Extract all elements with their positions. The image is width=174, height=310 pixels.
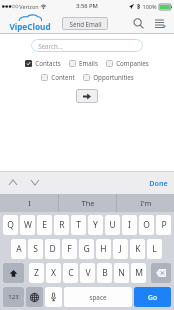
staticText: VipeCloud xyxy=(9,21,51,32)
staticText: A xyxy=(16,243,22,255)
button[interactable]: Y xyxy=(88,215,103,235)
staticText: The xyxy=(81,198,95,208)
button[interactable]: Next xyxy=(28,176,41,189)
button[interactable]: Content xyxy=(41,72,75,82)
staticText: J xyxy=(119,243,122,255)
staticText: H xyxy=(100,243,107,255)
staticText: E xyxy=(42,219,47,231)
button[interactable]: Contacts xyxy=(25,58,61,68)
button[interactable]: space xyxy=(64,287,132,307)
button[interactable]: Search xyxy=(128,13,148,33)
staticText: I xyxy=(28,198,31,208)
button[interactable]: VipeCloud xyxy=(4,12,56,34)
staticText: V xyxy=(85,267,91,279)
staticText: Q xyxy=(7,219,14,231)
button[interactable]: O xyxy=(139,215,154,235)
button[interactable]: L xyxy=(147,239,162,259)
staticText: Go xyxy=(148,293,157,302)
button[interactable]: Go xyxy=(76,89,98,103)
button[interactable]: Q xyxy=(3,215,18,235)
button[interactable]: Previous xyxy=(6,176,19,189)
button[interactable]: I xyxy=(122,215,137,235)
button[interactable]: Emails xyxy=(69,58,98,68)
staticText: O xyxy=(143,219,150,231)
button[interactable]: Search... xyxy=(31,39,143,52)
button[interactable]: A xyxy=(11,239,26,259)
staticText: K xyxy=(135,243,141,255)
staticText: B xyxy=(102,267,108,279)
staticText: Y xyxy=(93,219,98,231)
button[interactable]: Companies xyxy=(106,58,149,68)
button[interactable]: D xyxy=(45,239,60,259)
button[interactable]: C xyxy=(63,263,78,283)
button[interactable]: Menu xyxy=(150,13,170,33)
staticText: Emails xyxy=(79,59,98,67)
staticText: Contacts xyxy=(35,59,61,67)
button[interactable]: V xyxy=(80,263,95,283)
staticText: F xyxy=(67,243,72,255)
button[interactable]: H xyxy=(96,239,111,259)
staticText: Send Email xyxy=(69,20,102,28)
staticText: T xyxy=(76,219,81,231)
button[interactable]: W xyxy=(20,215,35,235)
staticText: Content xyxy=(51,73,75,81)
staticText: R xyxy=(59,219,65,231)
button[interactable]: P xyxy=(156,215,171,235)
button[interactable]: Done xyxy=(149,178,168,188)
button[interactable]: S xyxy=(28,239,43,259)
button[interactable]: Backspace xyxy=(151,263,171,283)
button[interactable]: Emoji xyxy=(26,287,43,307)
button[interactable]: M xyxy=(131,263,146,283)
staticText: U xyxy=(109,219,116,231)
button[interactable]: Z xyxy=(29,263,44,283)
button[interactable]: N xyxy=(114,263,129,283)
button[interactable]: I xyxy=(0,194,58,212)
staticText: I'm xyxy=(140,198,152,208)
staticText: 123 xyxy=(8,293,19,301)
staticText: S xyxy=(33,243,38,255)
staticText: P xyxy=(161,219,167,231)
staticText: Search... xyxy=(38,42,63,50)
button[interactable]: Opportunities xyxy=(83,72,134,82)
button[interactable]: B xyxy=(97,263,112,283)
staticText: Verizon xyxy=(19,3,39,10)
button[interactable]: 123 xyxy=(3,287,24,307)
button[interactable]: Send Email xyxy=(62,17,108,30)
staticText: X xyxy=(51,267,56,279)
staticText: M xyxy=(135,267,143,279)
staticText: W xyxy=(24,219,32,231)
staticText: L xyxy=(152,243,157,255)
staticText: space xyxy=(89,293,107,302)
button[interactable]: Shift xyxy=(3,263,24,283)
staticText: G xyxy=(83,243,90,255)
staticText: Z xyxy=(34,267,39,279)
button[interactable]: U xyxy=(105,215,120,235)
button[interactable]: F xyxy=(62,239,77,259)
staticText: Done xyxy=(149,178,168,188)
staticText: 100% xyxy=(142,3,157,10)
button[interactable]: J xyxy=(113,239,128,259)
button[interactable]: Dictate xyxy=(45,287,62,307)
button[interactable]: X xyxy=(46,263,61,283)
button[interactable]: E xyxy=(37,215,52,235)
button[interactable]: T xyxy=(71,215,86,235)
staticText: C xyxy=(68,267,74,279)
button[interactable]: G xyxy=(79,239,94,259)
button[interactable]: I'm xyxy=(117,194,174,212)
button[interactable]: R xyxy=(54,215,69,235)
staticText: 3:56 PM xyxy=(76,2,98,10)
button[interactable]: K xyxy=(130,239,145,259)
button[interactable]: Go xyxy=(134,287,171,307)
button[interactable]: The xyxy=(59,194,116,212)
staticText: Opportunities xyxy=(93,73,134,81)
staticText: I xyxy=(128,219,131,231)
staticText: Companies xyxy=(116,59,149,67)
staticText: N xyxy=(118,267,125,279)
staticText: D xyxy=(49,243,56,255)
